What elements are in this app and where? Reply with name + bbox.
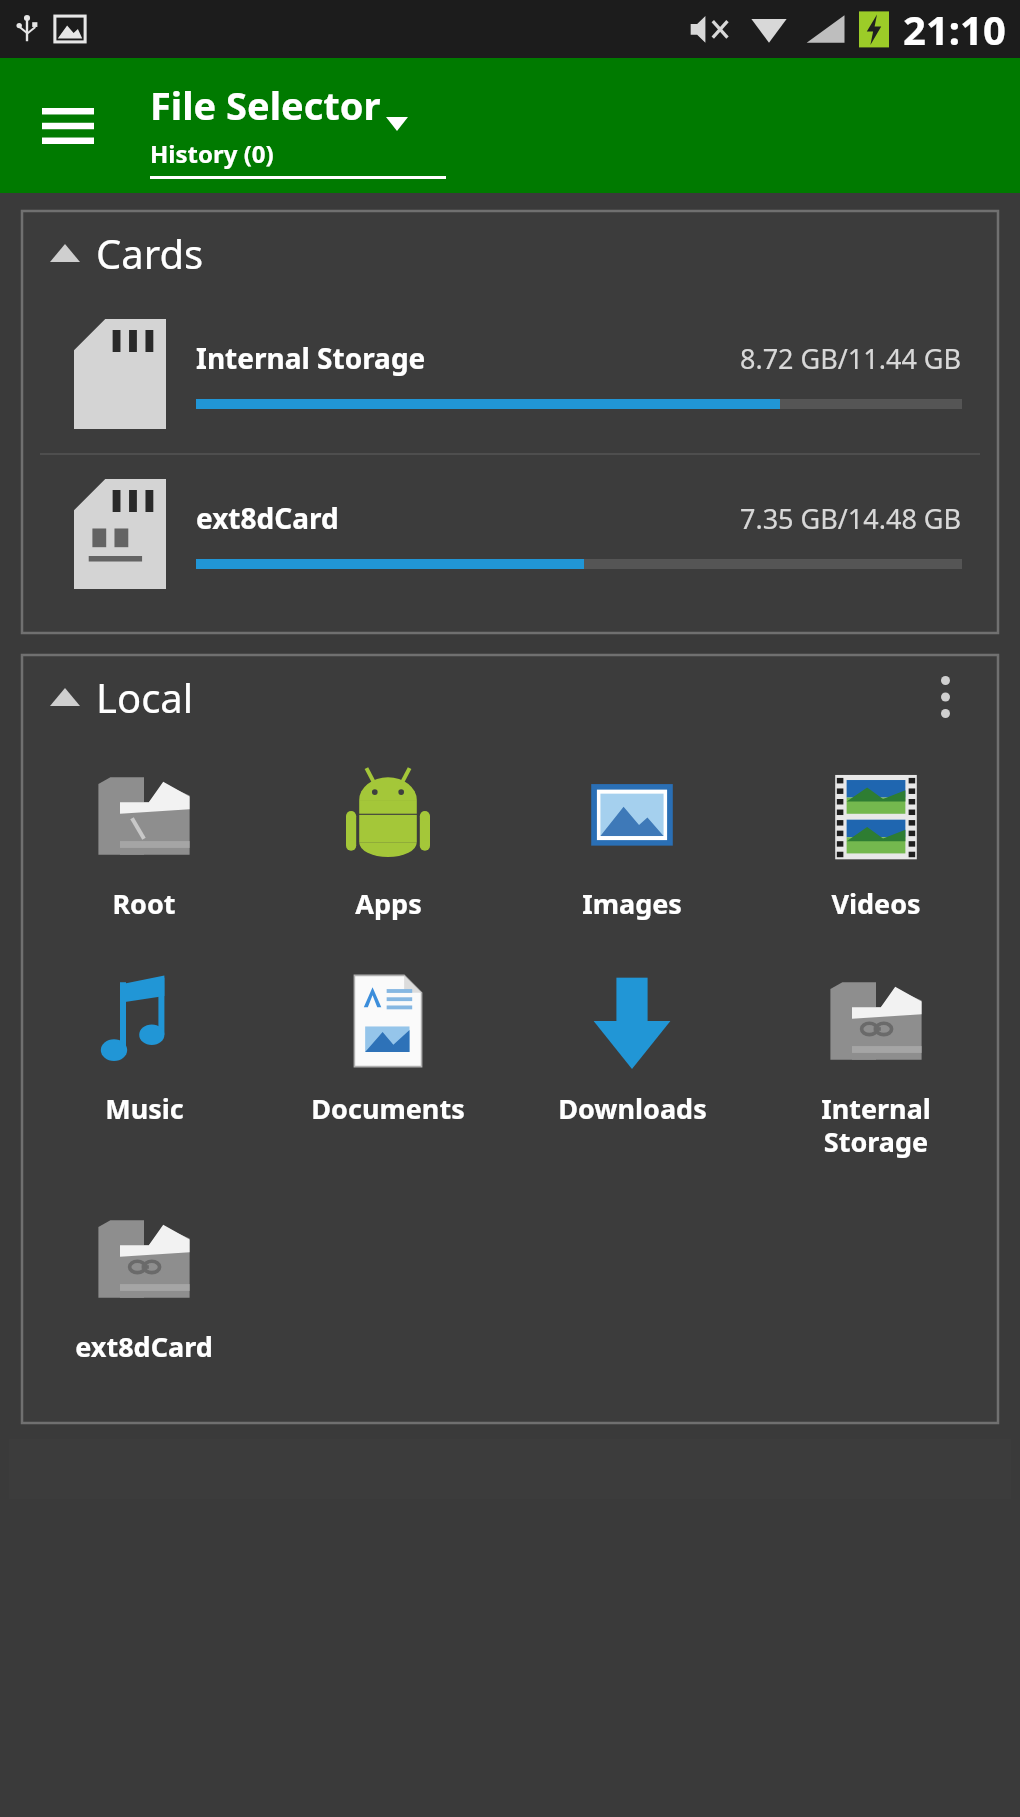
- staticText: Music: [105, 1090, 184, 1127]
- button[interactable]: Videos: [754, 755, 998, 926]
- button[interactable]: Downloads: [510, 960, 754, 1131]
- button[interactable]: ext8dCard: [22, 1198, 266, 1369]
- button[interactable]: Cards: [22, 211, 998, 295]
- staticText: ext8dCard: [75, 1328, 213, 1365]
- button[interactable]: Music: [22, 960, 266, 1131]
- button[interactable]: Apps: [266, 755, 510, 926]
- staticText: Local: [96, 670, 194, 724]
- button[interactable]: Images: [510, 755, 754, 926]
- staticText: Documents: [311, 1090, 465, 1127]
- staticText: Internal Storage: [196, 339, 426, 377]
- staticText: ext8dCard: [196, 499, 339, 537]
- button[interactable]: Open navigation drawer: [26, 84, 110, 168]
- staticText: Videos: [831, 885, 921, 922]
- staticText: Internal Storage: [821, 1090, 931, 1160]
- staticText: Images: [582, 885, 682, 922]
- button[interactable]: Internal Storage: [22, 295, 998, 453]
- staticText: Root: [112, 885, 176, 922]
- button[interactable]: ext8dCard: [22, 455, 998, 613]
- staticText: File Selector: [150, 79, 381, 131]
- staticText: Cards: [96, 226, 204, 280]
- staticText: 8.72 GB/11.44 GB: [740, 340, 962, 377]
- staticText: 7.35 GB/14.48 GB: [740, 500, 962, 537]
- staticText: Downloads: [558, 1090, 707, 1127]
- button[interactable]: Root: [22, 755, 266, 926]
- button[interactable]: Local: [22, 655, 998, 739]
- staticText: Apps: [355, 885, 422, 922]
- button[interactable]: File Selector: [150, 79, 408, 131]
- staticText: History (0): [150, 137, 274, 170]
- button[interactable]: More options: [910, 662, 980, 732]
- button[interactable]: Internal Storage: [754, 960, 998, 1164]
- button[interactable]: Documents: [266, 960, 510, 1131]
- staticText: 21:10: [903, 2, 1006, 56]
- button[interactable]: History (0): [150, 137, 446, 179]
